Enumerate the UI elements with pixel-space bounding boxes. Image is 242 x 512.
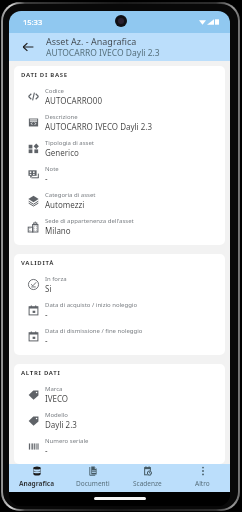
staticText: Altro [195,479,210,488]
staticText: Scadenze [133,479,162,488]
staticText: Data di dismissione / fine noleggio [45,327,143,335]
staticText: 15:33 [23,17,43,27]
button[interactable]: Documenti [65,464,120,492]
button[interactable]: Data di dismissione / fine noleggio [21,323,218,349]
staticText: Sede di appartenenza dell'asset [45,217,134,225]
staticText: - [45,445,48,456]
staticText: Documenti [76,479,110,488]
staticText: AUTOCARRO IVECO Dayli 2.3 [46,47,160,59]
button[interactable]: Descrizione [21,109,218,135]
button[interactable]: Marca [21,381,218,407]
staticText: Generico [45,147,79,158]
staticText: AUTOCARRO IVECO Dayli 2.3 [45,121,153,132]
button[interactable]: Numero seriale [21,433,218,459]
staticText: - [45,309,48,320]
staticText: Milano [45,225,71,236]
staticText: Data di acquisto / inizio noleggio [45,301,138,309]
staticText: DATI DI BASE [21,71,68,79]
staticText: AUTOCARRO00 [45,95,103,106]
staticText: Marca [45,385,63,393]
staticText: Automezzi [45,199,85,210]
button[interactable]: Sede di appartenenza dell'asset [21,213,218,239]
staticText: - [45,335,48,346]
button[interactable]: Altro [175,464,230,492]
staticText: In forza [45,275,67,283]
staticText: Descrizione [45,113,78,121]
button[interactable]: Back [9,33,46,61]
button[interactable]: Codice [21,83,218,109]
staticText: IVECO [45,393,69,404]
button[interactable]: Categoria di asset [21,187,218,213]
button[interactable]: Anagrafica [9,464,65,492]
button[interactable]: Tipologia di asset [21,135,218,161]
staticText: Numero seriale [45,437,89,445]
button[interactable]: Data di acquisto / inizio noleggio [21,297,218,323]
staticText: Si [45,283,52,294]
button[interactable]: Scadenze [120,464,175,492]
staticText: VALIDITÀ [21,259,55,267]
staticText: Asset Az. - Anagrafica [46,35,137,47]
button[interactable]: In forza [21,271,218,297]
staticText: Anagrafica [19,479,55,488]
button[interactable]: Note [21,161,218,187]
staticText: Note [45,165,59,173]
staticText: - [45,173,48,184]
staticText: ALTRI DATI [21,369,61,377]
staticText: Tipologia di asset [45,139,95,147]
staticText: Categoria di asset [45,191,96,199]
staticText: Codice [45,87,64,95]
button[interactable]: Modello [21,407,218,433]
staticText: Modello [45,411,68,419]
staticText: Dayli 2.3 [45,419,77,430]
